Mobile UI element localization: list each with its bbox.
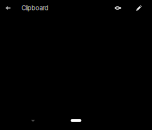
button[interactable]: Hide keyboard bbox=[29, 116, 37, 124]
button[interactable]: Edit bbox=[131, 0, 147, 16]
staticText: Clipboard bbox=[21, 4, 48, 12]
button[interactable]: Show passwords bbox=[110, 0, 126, 16]
button[interactable]: Back bbox=[0, 0, 16, 16]
